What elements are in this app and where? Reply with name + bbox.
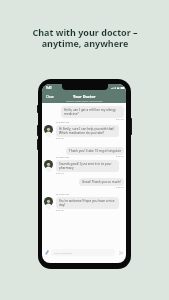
staticText: Typically replies within a few minutes	[66, 100, 103, 103]
staticText: Type a message	[54, 251, 72, 254]
staticText: Your Doctor	[73, 94, 96, 99]
button[interactable]: Hello, can I get a refill on my allergy …	[61, 106, 124, 118]
staticText: Sounds good! I just sent it in to your p…	[59, 162, 116, 170]
button[interactable]: Great! Thank you so much!	[79, 178, 124, 186]
staticText: Close	[46, 95, 54, 99]
staticText: Dr. Emily Lane	[56, 193, 70, 196]
staticText: Hi Emily, sure I can help you with that!…	[59, 127, 116, 135]
staticText: 9:41 AM	[116, 118, 124, 121]
staticText: 9:43 AM	[116, 155, 124, 158]
staticText: Thank you! I take 10 mg of singulair	[69, 149, 121, 153]
button[interactable]: You're welcome! Hope you have a nice day…	[56, 197, 119, 209]
staticText: Chat with your doctor – anytime, anywher…	[32, 26, 138, 50]
button[interactable]: Thank you! I take 10 mg of singulair	[66, 147, 124, 155]
button[interactable]: Sounds good! I just sent it in to your p…	[56, 160, 119, 172]
staticText: Dr. Emily Lane	[56, 156, 70, 159]
staticText: Hello, can I get a refill on my allergy …	[64, 108, 121, 116]
staticText: 9:41	[46, 86, 52, 90]
staticText: 9:44 AM	[56, 172, 64, 175]
staticText: 9:42 AM	[56, 137, 64, 140]
staticText: Great! Thank you so much!	[82, 180, 121, 184]
staticText: 9:46 AM	[56, 209, 64, 212]
button[interactable]: Attach file	[42, 249, 51, 256]
button[interactable]: Hi Emily, sure I can help you with that!…	[56, 125, 119, 137]
button[interactable]: Type a message	[51, 249, 115, 256]
button[interactable]: Send message	[115, 249, 126, 256]
button[interactable]: Close	[44, 94, 56, 100]
staticText: 9:45 AM	[116, 186, 124, 189]
staticText: You're welcome! Hope you have a nice day…	[59, 199, 116, 207]
staticText: Dr. Emily Lane	[56, 121, 70, 124]
